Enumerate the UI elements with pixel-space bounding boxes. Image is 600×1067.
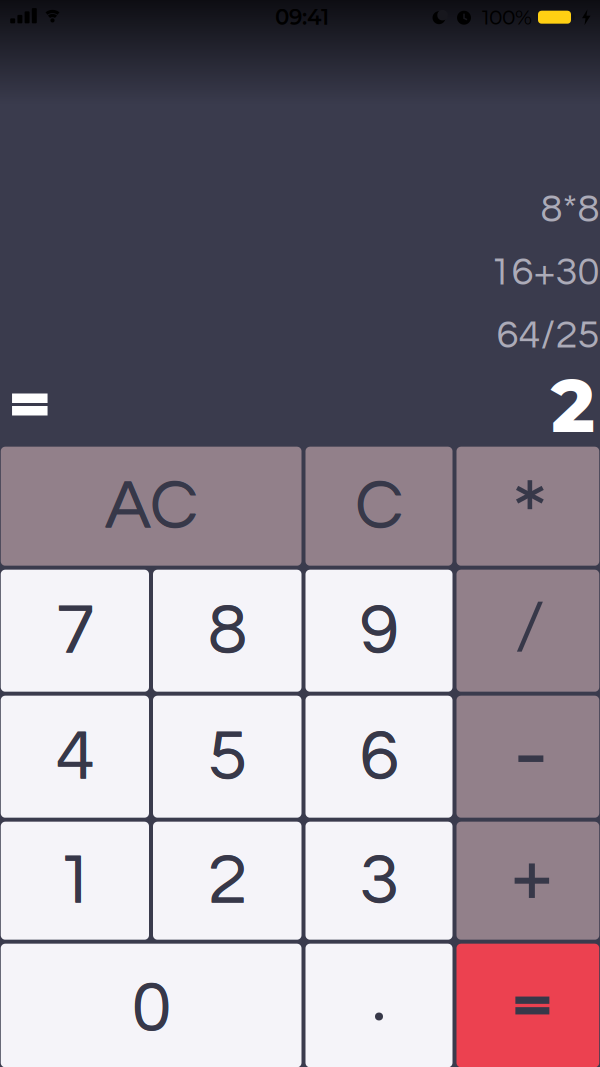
staticText: 16+30	[489, 252, 599, 293]
staticText: AC	[105, 471, 198, 542]
button[interactable]: Clear	[305, 447, 452, 566]
button[interactable]: Decimal point	[305, 944, 452, 1067]
staticText: 2	[208, 844, 247, 917]
staticText: 6	[360, 720, 399, 794]
button[interactable]: Divide	[456, 570, 599, 692]
staticText: 4	[56, 720, 95, 794]
staticText: 9	[360, 594, 399, 668]
staticText: 3	[360, 844, 399, 918]
staticText: 1	[55, 844, 94, 917]
button[interactable]: Multiply	[456, 447, 599, 566]
button[interactable]: All clear	[1, 447, 302, 566]
staticText: AC	[105, 470, 198, 542]
staticText: 100%	[482, 5, 532, 29]
staticText: 09:41	[275, 4, 329, 30]
staticText: 7	[55, 594, 94, 667]
button[interactable]: 6	[305, 696, 452, 818]
button[interactable]: 4	[1, 696, 149, 818]
button[interactable]: 3	[305, 822, 452, 940]
staticText: 4	[55, 720, 94, 793]
staticText: 1	[56, 844, 95, 918]
staticText: 2	[208, 844, 247, 918]
button[interactable]: 8	[153, 570, 301, 692]
staticText: 8	[208, 594, 247, 667]
staticText: 64/25	[496, 315, 599, 356]
button[interactable]: 1	[1, 822, 149, 940]
staticText: 3	[359, 844, 398, 917]
button[interactable]: 2	[153, 822, 301, 940]
staticText: 8*8	[540, 189, 599, 230]
staticText: 6	[359, 720, 398, 793]
staticText: 0	[132, 972, 171, 1046]
staticText: 5	[208, 720, 247, 794]
staticText: 0	[132, 972, 171, 1045]
button[interactable]: Equals	[456, 944, 599, 1067]
staticText: C	[355, 470, 403, 542]
button[interactable]: 7	[1, 570, 149, 692]
button[interactable]: 5	[153, 696, 301, 818]
button[interactable]: Plus	[456, 822, 599, 940]
staticText: 9	[359, 594, 398, 667]
staticText: 5	[208, 720, 247, 793]
staticText: 2	[551, 361, 595, 450]
staticText: 7	[56, 594, 95, 668]
button[interactable]: 0	[1, 944, 302, 1067]
button[interactable]: Minus	[456, 696, 599, 818]
staticText: 8	[208, 594, 247, 668]
button[interactable]: 9	[305, 570, 452, 692]
staticText: C	[356, 471, 404, 542]
